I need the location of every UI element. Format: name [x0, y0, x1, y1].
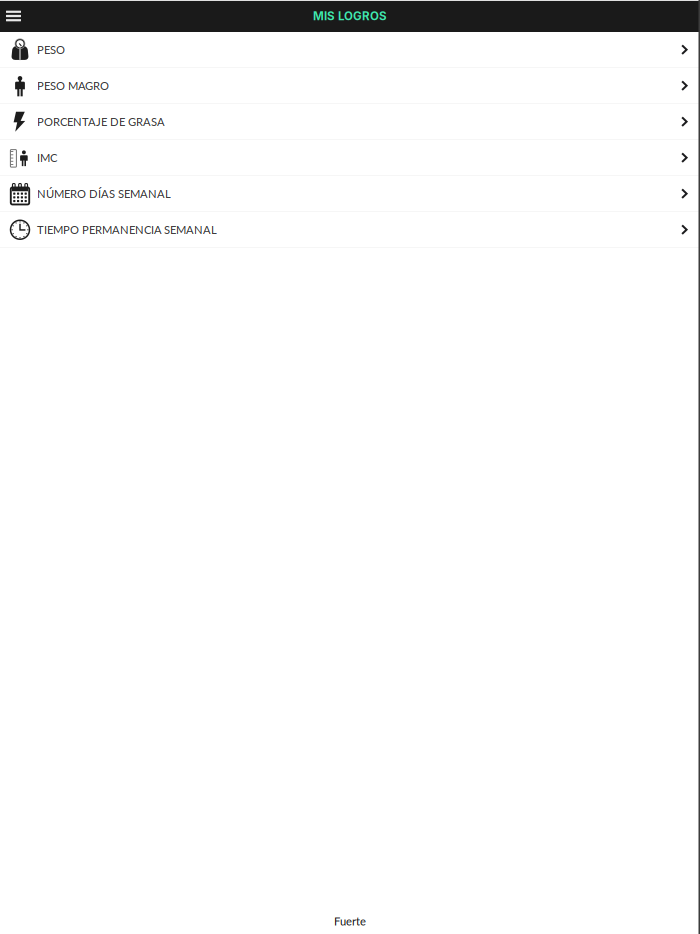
button[interactable]: PESO MAGRO: [0, 68, 700, 104]
staticText: MIS LOGROS: [313, 9, 387, 23]
staticText: NÚMERO DÍAS SEMANAL: [37, 187, 171, 200]
staticText: PESO: [37, 43, 65, 56]
staticText: PESO MAGRO: [37, 79, 109, 92]
button[interactable]: TIEMPO PERMANENCIA SEMANAL: [0, 212, 700, 248]
staticText: PORCENTAJE DE GRASA: [37, 115, 165, 128]
button[interactable]: NÚMERO DÍAS SEMANAL: [0, 176, 700, 212]
staticText: Fuerte: [334, 915, 366, 928]
button[interactable]: Menu: [0, 0, 30, 32]
button[interactable]: PORCENTAJE DE GRASA: [0, 104, 700, 140]
button[interactable]: IMC: [0, 140, 700, 176]
button[interactable]: PESO: [0, 32, 700, 68]
staticText: IMC: [37, 151, 57, 164]
staticText: TIEMPO PERMANENCIA SEMANAL: [37, 223, 217, 236]
